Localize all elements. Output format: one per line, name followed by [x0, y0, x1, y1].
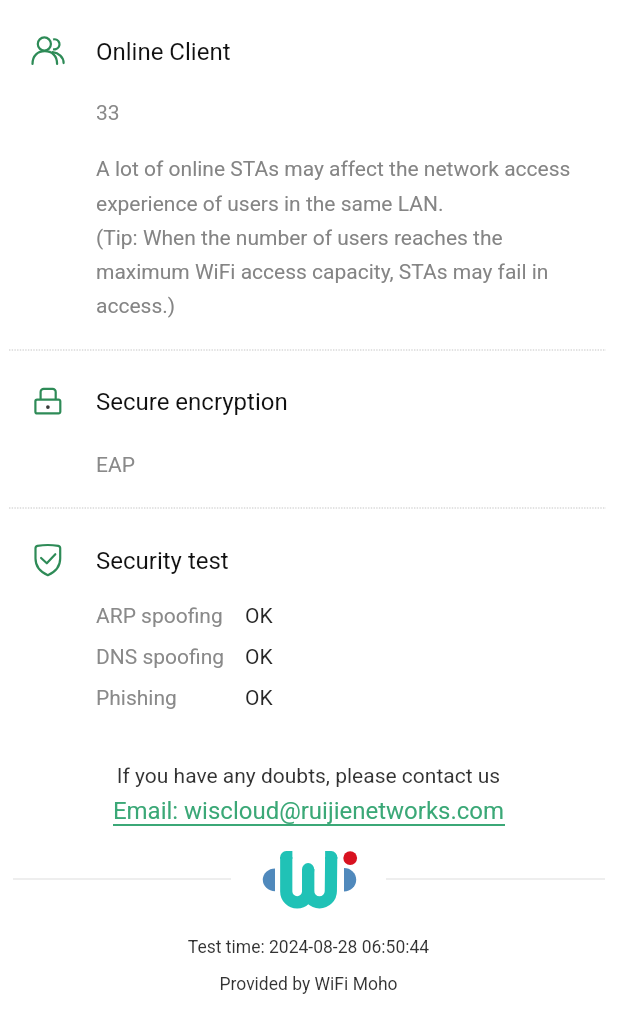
- staticText: OK: [245, 686, 273, 711]
- staticText: DNS spoofing: [96, 645, 225, 670]
- staticText: Phishing: [96, 686, 177, 711]
- staticText: If you have any doubts, please contact u…: [0, 764, 617, 789]
- staticText: Provided by WiFi Moho: [0, 974, 617, 995]
- staticText: Security test: [96, 547, 229, 575]
- other: Online client: [32, 34, 64, 66]
- button[interactable]: Email: wiscloud@ruijienetworks.com: [0, 795, 617, 831]
- staticText: OK: [245, 645, 273, 670]
- button[interactable]: Phishing: [96, 686, 416, 720]
- staticText: 33: [96, 101, 120, 126]
- button[interactable]: ARP spoofing: [96, 604, 416, 638]
- staticText: OK: [245, 604, 273, 629]
- staticText: Test time: 2024-08-28 06:50:44: [0, 937, 617, 958]
- staticText: Online Client: [96, 38, 231, 66]
- button[interactable]: DNS spoofing: [96, 645, 416, 679]
- staticText: EAP: [96, 453, 135, 478]
- staticText: Secure encryption: [96, 388, 288, 416]
- staticText: Email: wiscloud@ruijienetworks.com: [0, 797, 617, 825]
- staticText: ARP spoofing: [96, 604, 223, 629]
- other: Security test: [32, 544, 64, 576]
- other: Secure encryption: [32, 386, 64, 418]
- staticText: A lot of online STAs may affect the netw…: [96, 157, 578, 318]
